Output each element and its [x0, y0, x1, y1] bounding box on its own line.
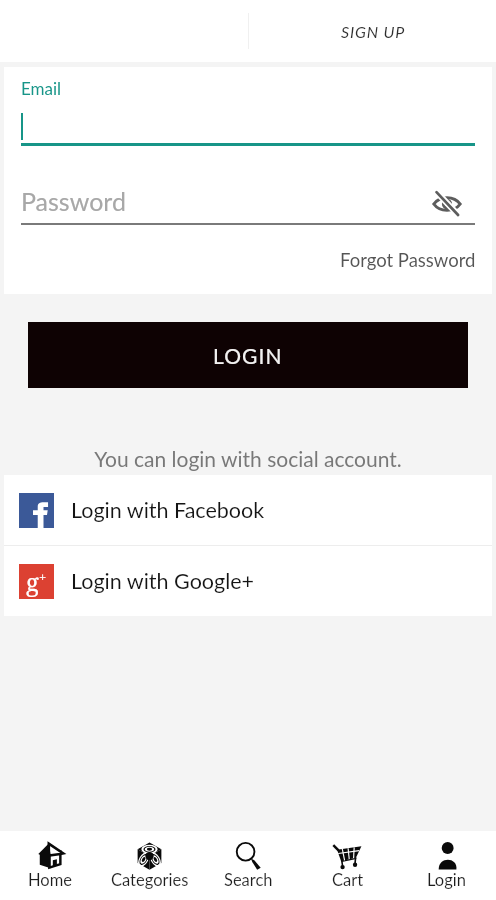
staticText: Login with Facebook	[71, 497, 265, 523]
button[interactable]: g	[4, 546, 492, 616]
button[interactable]: SIGN UP	[249, 0, 496, 62]
staticText: g	[26, 565, 39, 598]
button[interactable]: LOGIN	[28, 322, 468, 388]
staticText: Password	[21, 186, 126, 216]
staticText: Login with Google+	[71, 568, 255, 594]
staticText: Categories	[111, 870, 189, 890]
staticText: +	[39, 568, 47, 586]
button[interactable]: Cart	[298, 831, 397, 900]
button[interactable]	[21, 106, 475, 146]
button[interactable]: Login with Facebook	[4, 475, 492, 545]
button[interactable]: Categories	[100, 831, 199, 900]
staticText: Cart	[332, 870, 364, 890]
staticText: You can login with social account.	[0, 446, 496, 471]
button[interactable]: Password	[21, 186, 475, 225]
staticText: SIGN UP	[341, 22, 405, 41]
button[interactable]: Show password	[430, 187, 464, 221]
staticText: Search	[224, 870, 273, 890]
button[interactable]: Login	[397, 831, 496, 900]
button[interactable]: Home	[0, 831, 100, 900]
staticText: Email	[21, 78, 62, 98]
button[interactable]: Forgot Password	[340, 249, 476, 271]
button[interactable]: Search	[199, 831, 298, 900]
staticText: Forgot Password	[340, 249, 476, 271]
staticText: Login	[427, 870, 466, 890]
staticText: LOGIN	[213, 343, 283, 368]
staticText: Home	[28, 870, 72, 890]
